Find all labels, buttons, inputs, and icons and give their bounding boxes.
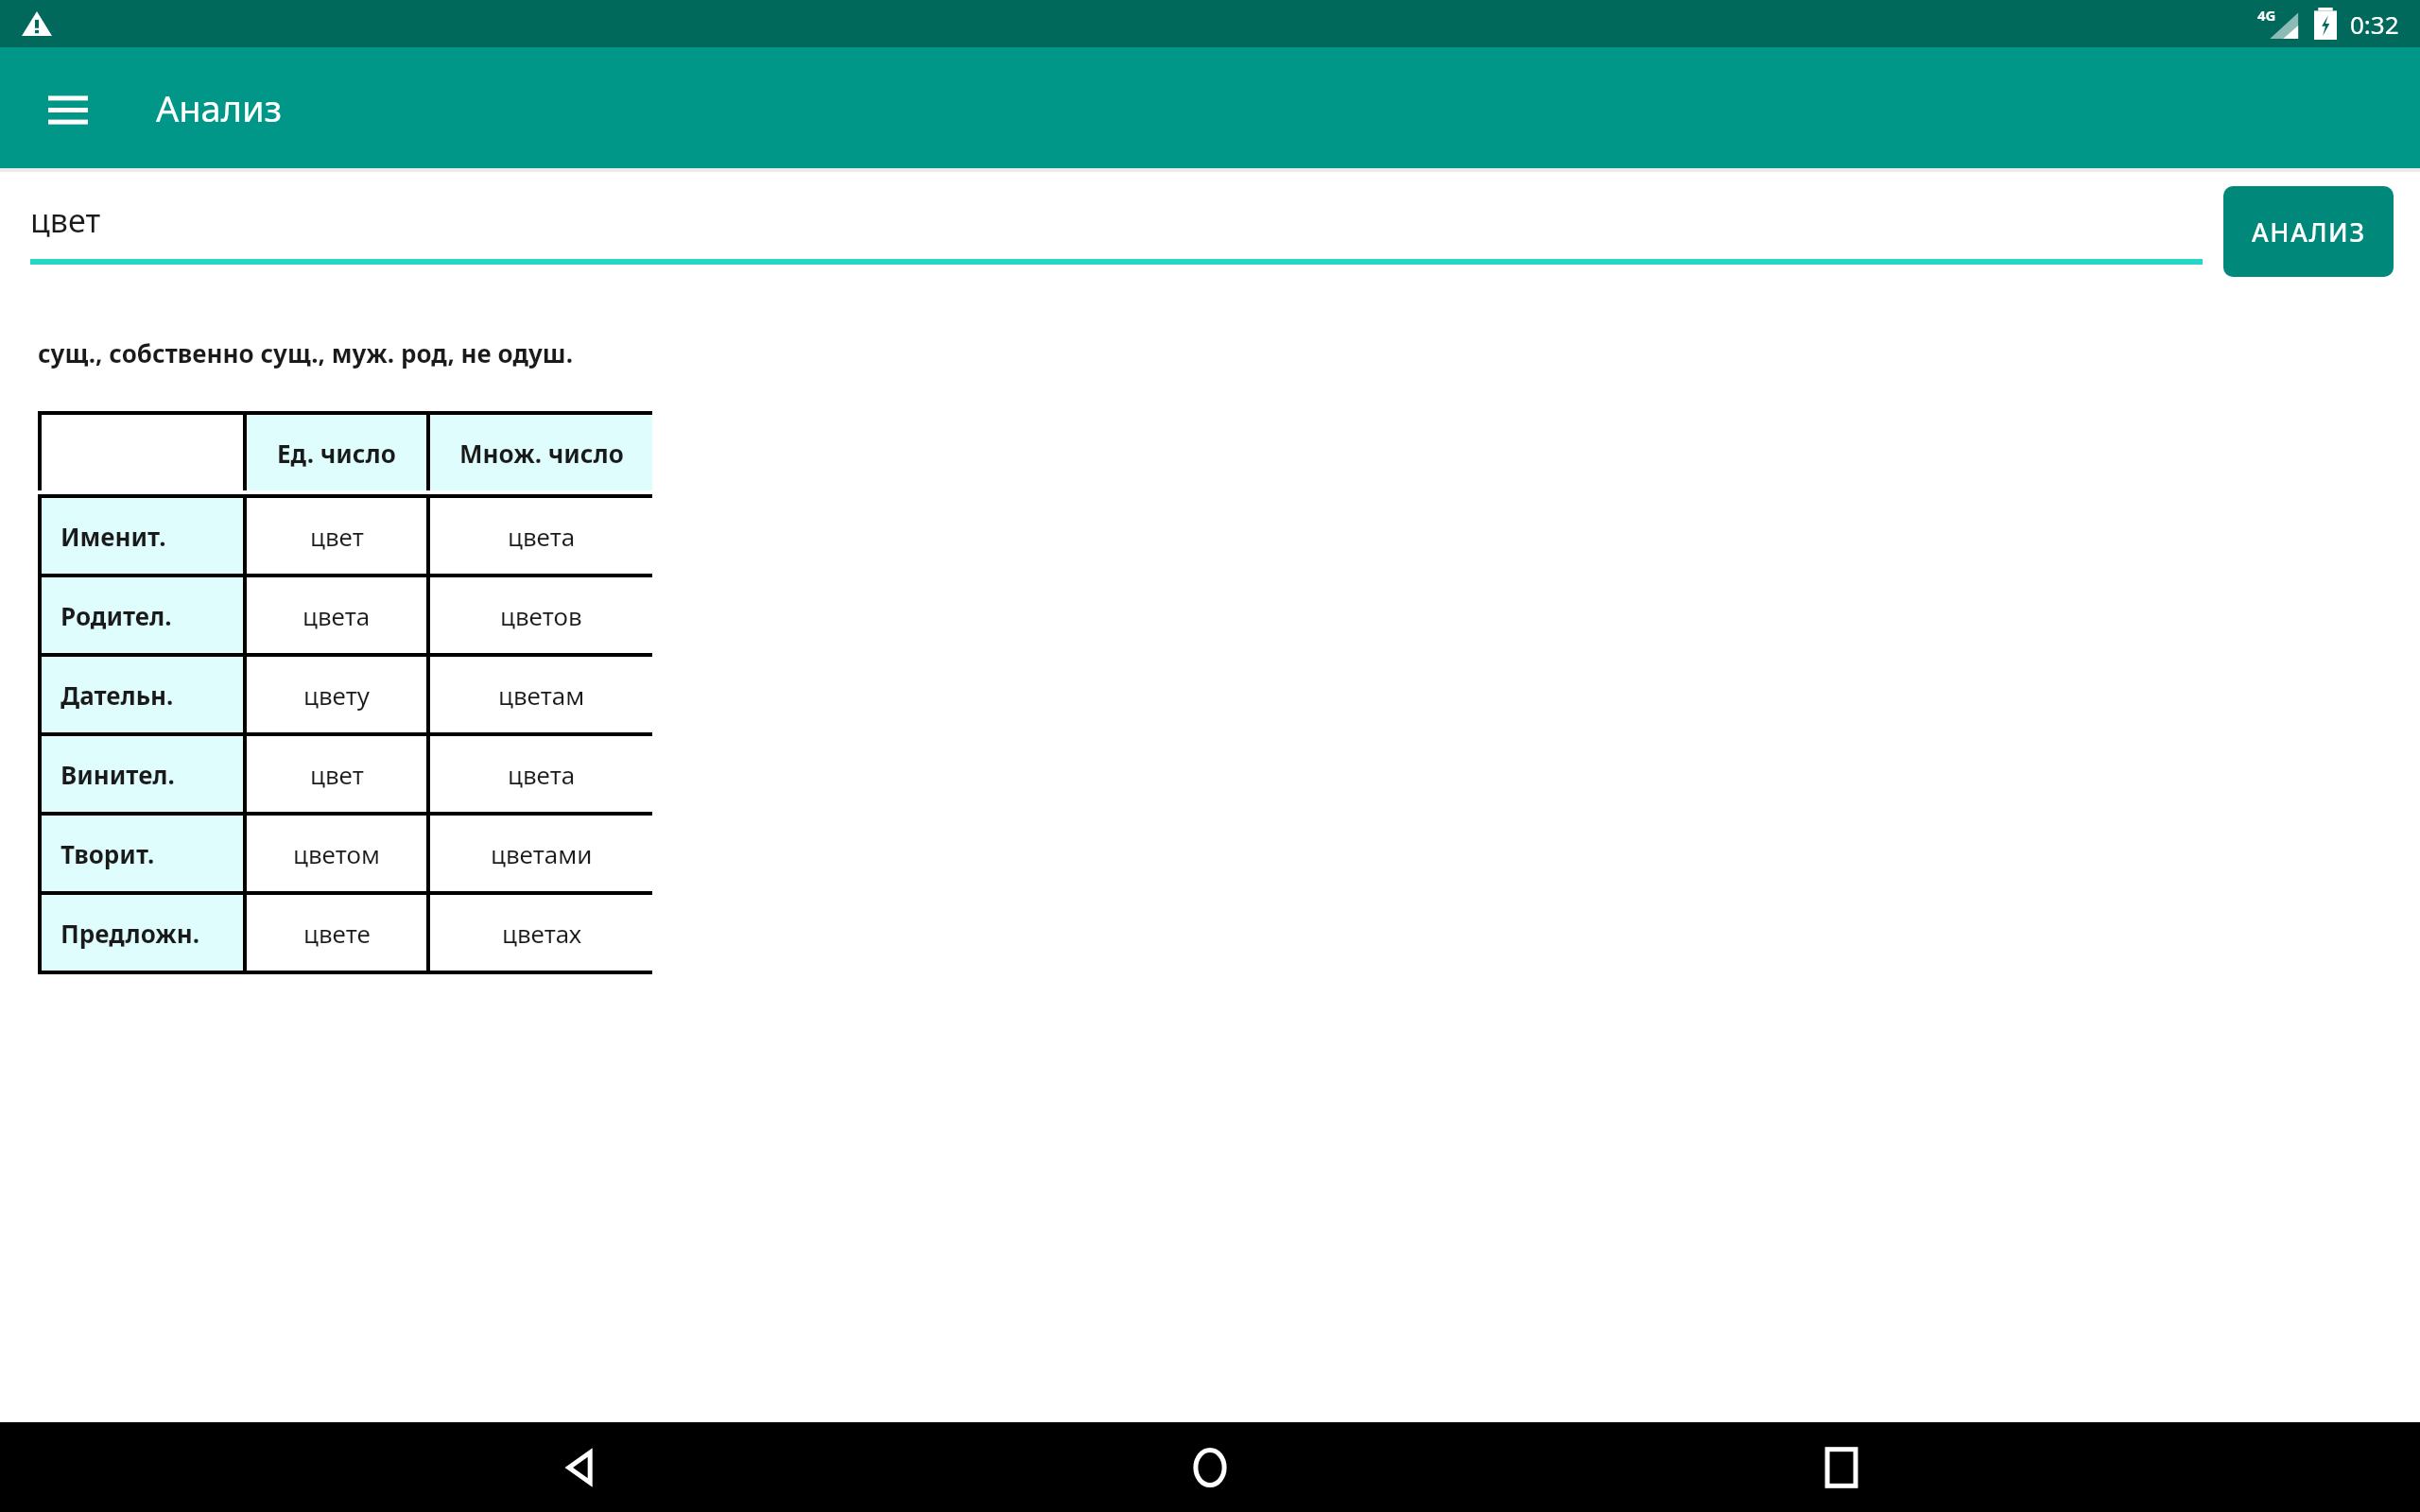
staticText: 4G [2257,6,2276,25]
staticText: цвет [310,758,364,791]
staticText: Анализ [156,83,283,132]
staticText: Множ. число [459,437,624,470]
staticText: 0:32 [2350,8,2399,41]
staticText: цветом [293,837,380,870]
button[interactable]: Home [1158,1422,1262,1512]
staticText: Дательн. [60,679,174,712]
staticText: цвет [310,520,364,553]
button[interactable]: цвет [30,198,2203,265]
staticText: цветами [491,837,593,870]
button[interactable]: АНАЛИЗ [2223,186,2394,277]
staticText: Винител. [60,758,175,791]
staticText: цвета [508,758,576,791]
staticText: Творит. [60,837,155,870]
staticText: Родител. [60,599,172,632]
button[interactable]: Back [527,1422,631,1512]
staticText: цветов [500,599,582,632]
staticText: цвету [303,679,370,712]
staticText: Именит. [60,520,166,553]
staticText: цветах [502,917,581,950]
staticText: Предложн. [60,917,200,950]
staticText: Ед. число [277,437,396,470]
staticText: цвете [303,917,371,950]
staticText: АНАЛИЗ [2252,215,2366,249]
staticText: цвет [30,198,101,242]
button[interactable]: Open navigation menu [38,77,98,138]
staticText: цветам [498,679,585,712]
staticText: сущ., собственно сущ., муж. род, не одуш… [38,336,573,369]
staticText: цвета [508,520,576,553]
button[interactable]: Recent apps [1789,1422,1893,1512]
staticText: цвета [302,599,371,632]
